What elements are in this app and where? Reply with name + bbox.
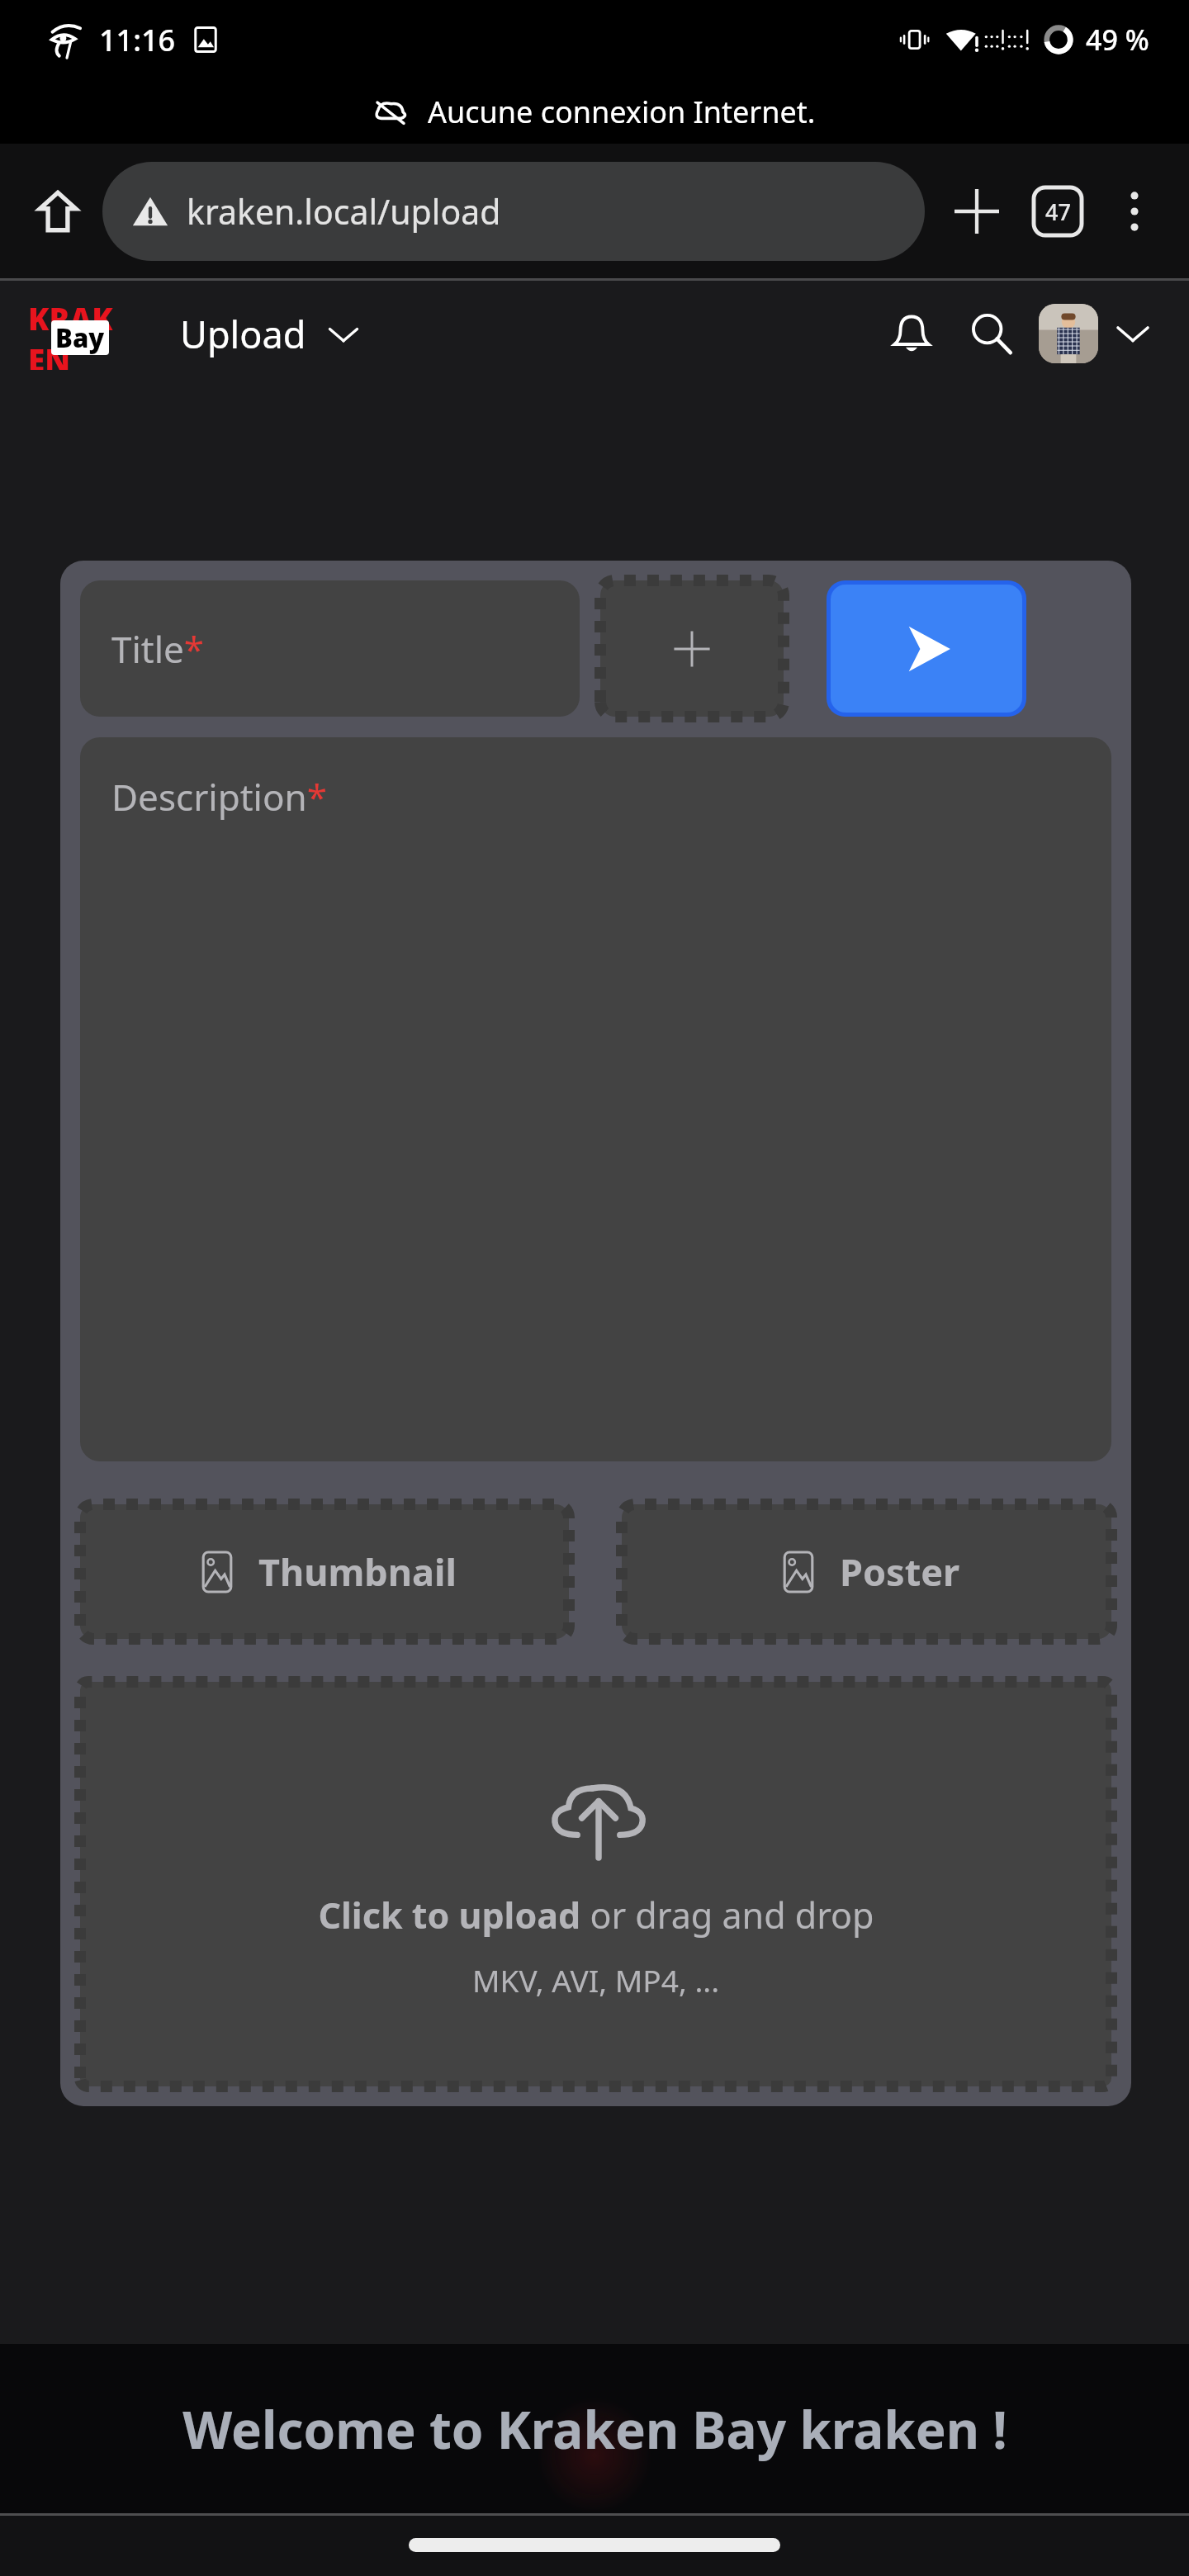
- staticText: Click to upload or drag and drop: [318, 1891, 874, 1939]
- button[interactable]: Home: [21, 175, 94, 248]
- staticText: kraken.local/upload: [187, 188, 501, 234]
- staticText: MKV, AVI, MP4, ...: [472, 1959, 720, 2001]
- button[interactable]: Description*: [80, 737, 1111, 1461]
- staticText: Bay: [55, 320, 105, 355]
- button[interactable]: Profile: [1039, 304, 1098, 363]
- staticText: Upload: [180, 309, 306, 359]
- button[interactable]: Poster: [622, 1504, 1111, 1639]
- button[interactable]: Click to upload or drag and drop: [80, 1682, 1111, 2086]
- staticText: KRAKEN: [28, 297, 127, 370]
- button[interactable]: More options: [1098, 175, 1171, 248]
- staticText: Title*: [111, 624, 205, 674]
- staticText: 47: [1045, 197, 1071, 227]
- button[interactable]: KRAKEN: [28, 297, 127, 370]
- button[interactable]: Thumbnail: [80, 1504, 569, 1639]
- button[interactable]: Send: [831, 585, 1022, 713]
- button[interactable]: Add: [600, 580, 784, 717]
- staticText: Thumbnail: [258, 1546, 457, 1597]
- staticText: Description*: [111, 772, 328, 822]
- staticText: Welcome to Kraken Bay kraken !: [182, 2394, 1007, 2464]
- staticText: 11:16: [99, 20, 176, 60]
- staticText: 49 %: [1086, 21, 1149, 59]
- button[interactable]: Search: [951, 294, 1030, 373]
- staticText: Aucune connexion Internet.: [428, 92, 816, 132]
- button[interactable]: kraken.local/upload: [102, 162, 925, 261]
- button[interactable]: Notifications: [872, 294, 951, 373]
- button[interactable]: Title*: [80, 580, 580, 717]
- button[interactable]: New tab: [938, 173, 1016, 250]
- button[interactable]: Account menu: [1100, 301, 1166, 367]
- button[interactable]: Tabs: 47: [1019, 173, 1097, 250]
- button[interactable]: Upload: [175, 301, 367, 367]
- staticText: Poster: [840, 1546, 960, 1597]
